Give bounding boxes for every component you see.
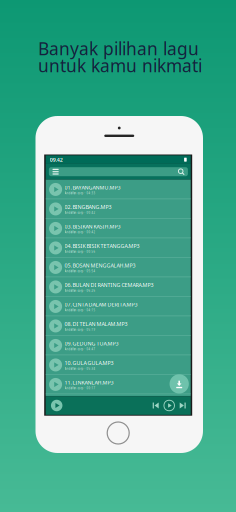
staticText: Andalfan corp · 00:42: [64, 211, 95, 214]
staticText: 04. BISIK BISIK TETANGGA.MP3: [64, 242, 139, 249]
button[interactable]: Download: [170, 374, 189, 393]
button[interactable]: 09. GEDUNG TUA.MP3: [46, 336, 191, 355]
staticText: Andalfan corp · 00:17: [64, 386, 95, 390]
staticText: Andalfan corp · 06:26: [64, 289, 95, 292]
staticText: Banyak pilihan lagu: [38, 37, 199, 60]
staticText: Andalfan corp · 05:54: [64, 269, 95, 273]
button[interactable]: Play: [50, 398, 64, 412]
button[interactable]: 11. LINKANLAH.MP3: [46, 375, 191, 394]
button[interactable]: Next: [179, 400, 187, 410]
button[interactable]: 10. GULA GULA.MP3: [46, 355, 191, 375]
button[interactable]: Previous: [152, 400, 160, 410]
button[interactable]: 06. BULAN DI RANTING CEMARA.MP3: [46, 277, 191, 297]
staticText: Andalfan corp · 04:47: [64, 347, 95, 351]
staticText: 09. GEDUNG TUA.MP3: [64, 340, 118, 347]
button[interactable]: 01. BAYANGANMU.MP3: [46, 180, 191, 199]
staticText: 07. CINTA DALAM DERITA.MP3: [64, 301, 137, 308]
staticText: Andalfan corp · 05:19: [64, 328, 95, 331]
staticText: Andalfan corp · 04:33: [64, 191, 95, 195]
staticText: Andalfan corp · 04:15: [64, 308, 95, 312]
button[interactable]: 07. CINTA DALAM DERITA.MP3: [46, 297, 191, 316]
staticText: 05. BOSAN MENGGALAH.MP3: [64, 262, 135, 269]
staticText: 09.42: [50, 156, 63, 163]
button[interactable]: 03. BISIKAN KASIH.MP3: [46, 219, 191, 238]
button[interactable]: Menu: [50, 167, 61, 176]
staticText: untuk kamu nikmati: [38, 54, 202, 77]
button[interactable]: 08. DI TELAN MALAM.MP3: [46, 316, 191, 336]
staticText: Andalfan corp · 00:42: [64, 230, 95, 234]
staticText: 11. LINKANLAH.MP3: [64, 379, 113, 386]
staticText: Andalfan corp · 00:56: [64, 250, 95, 253]
button[interactable]: Search: [176, 167, 187, 176]
button[interactable]: 04. BISIK BISIK TETANGGA.MP3: [46, 238, 191, 258]
button[interactable]: 05. BOSAN MENGGALAH.MP3: [46, 258, 191, 277]
button[interactable]: 02. BINGBANG.MP3: [46, 199, 191, 219]
staticText: 03. BISIKAN KASIH.MP3: [64, 223, 120, 230]
button[interactable]: Play pause: [163, 399, 175, 411]
staticText: Andalfan corp · 05:34: [64, 367, 95, 370]
staticText: 10. GULA GULA.MP3: [64, 359, 113, 366]
staticText: 08. DI TELAN MALAM.MP3: [64, 320, 127, 327]
staticText: 06. BULAN DI RANTING CEMARA.MP3: [64, 281, 153, 288]
staticText: 02. BINGBANG.MP3: [64, 203, 111, 210]
staticText: 01. BAYANGANMU.MP3: [64, 184, 120, 191]
